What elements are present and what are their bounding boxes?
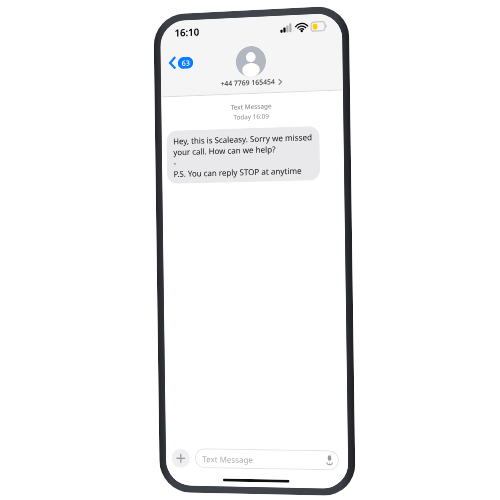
staticText: 16:10 <box>174 25 200 40</box>
button[interactable]: Contact avatar <box>236 45 266 78</box>
staticText: +44 7769 165454 <box>220 77 275 89</box>
staticText: Text Message <box>161 99 343 114</box>
button[interactable]: +44 7769 165454 <box>161 74 343 96</box>
staticText: Hey, this is Scaleasy. Sorry we missed y… <box>173 131 313 179</box>
button[interactable]: Back to conversations <box>167 51 195 74</box>
button[interactable]: Add attachment <box>172 449 190 468</box>
staticText: Today 16:09 <box>161 109 343 124</box>
button[interactable]: Text Message <box>195 448 339 471</box>
staticText: 63 <box>182 58 190 68</box>
button[interactable]: Hey, this is Scaleasy. Sorry we missed y… <box>166 126 320 184</box>
staticText: Text Message <box>202 453 253 465</box>
